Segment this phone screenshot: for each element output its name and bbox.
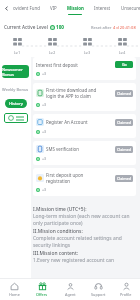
staticText: First-time download and bbox=[46, 87, 97, 93]
staticText: Lv.1 bbox=[14, 50, 21, 55]
button[interactable]: Profile bbox=[112, 279, 140, 300]
button[interactable]: Offers bbox=[28, 279, 56, 300]
staticText: Offers bbox=[36, 292, 48, 297]
staticText: Current Active Level bbox=[4, 24, 48, 30]
staticText: Home bbox=[9, 292, 20, 297]
staticText: SMS verification bbox=[46, 146, 79, 152]
button[interactable]: Claimed bbox=[115, 90, 133, 97]
staticText: 4 d 20:41:08 bbox=[113, 25, 136, 30]
staticText: Claimed bbox=[117, 120, 131, 125]
staticText: Long-term mission (each new account can … bbox=[33, 213, 130, 226]
staticText: Register An Account bbox=[46, 119, 88, 125]
staticText: +3 bbox=[42, 71, 47, 76]
button[interactable]: Claimed bbox=[115, 146, 133, 153]
staticText: Weekly Bonus bbox=[2, 87, 29, 92]
button[interactable]: Register An Account bbox=[33, 114, 136, 138]
button[interactable]: Claimed bbox=[115, 119, 133, 126]
button[interactable]: History bbox=[5, 99, 27, 108]
button[interactable]: Back bbox=[0, 0, 13, 16]
staticText: II.Mission conditions: bbox=[33, 228, 83, 235]
button[interactable]: Unsecure bbox=[121, 0, 140, 16]
button[interactable]: Weekly Bonus bbox=[2, 85, 29, 94]
button[interactable]: Newcomer Bonus bbox=[2, 65, 29, 78]
staticText: Support bbox=[91, 292, 106, 297]
staticText: Mission bbox=[67, 5, 84, 11]
staticText: registration bbox=[46, 178, 70, 184]
staticText: Claimed bbox=[117, 147, 131, 152]
staticText: Interest bbox=[94, 5, 111, 11]
button[interactable]: SMS verification bbox=[33, 141, 136, 165]
staticText: History bbox=[9, 101, 23, 106]
staticText: +3 bbox=[42, 102, 47, 107]
button[interactable]: Go bbox=[115, 61, 133, 68]
staticText: Newcomer Bonus bbox=[2, 67, 29, 77]
staticText: Go bbox=[122, 62, 127, 67]
button[interactable]: First-time download and bbox=[33, 83, 136, 111]
staticText: Interest first deposit bbox=[36, 62, 78, 68]
staticText: ovident Fund bbox=[13, 5, 40, 11]
button[interactable]: VIP bbox=[50, 0, 57, 16]
button[interactable]: Claimed bbox=[115, 175, 133, 182]
staticText: Agent bbox=[65, 292, 76, 297]
button[interactable]: Level 3 bbox=[77, 38, 97, 55]
button[interactable]: Support bbox=[84, 279, 112, 300]
staticText: I.Mission time (UTC+5): bbox=[33, 206, 87, 213]
button[interactable]: Home bbox=[0, 279, 28, 300]
button[interactable]: Mission bbox=[67, 0, 84, 16]
staticText: 100 bbox=[56, 24, 64, 30]
staticText: Lv.3 bbox=[84, 50, 91, 55]
staticText: First deposit upon bbox=[46, 172, 84, 178]
staticText: +3 bbox=[42, 156, 47, 161]
staticText: Lv.2 bbox=[49, 50, 56, 55]
staticText: login the APP to claim bbox=[46, 93, 91, 99]
staticText: Lv.4 bbox=[119, 50, 126, 55]
staticText: Claimed bbox=[117, 176, 131, 181]
button[interactable]: Level 1 bbox=[7, 38, 27, 55]
staticText: Profile bbox=[120, 292, 132, 297]
staticText: +3 bbox=[42, 187, 47, 192]
button[interactable]: Interest first deposit bbox=[33, 57, 136, 80]
staticText: VIP bbox=[50, 5, 57, 11]
staticText: Claimed bbox=[117, 91, 131, 96]
staticText: Reset after bbox=[91, 25, 112, 30]
button[interactable]: First deposit upon bbox=[33, 168, 136, 196]
staticText: 1.Every new registered account can bbox=[33, 257, 115, 264]
button[interactable]: Agent bbox=[56, 279, 84, 300]
staticText: Complete account related settings and se… bbox=[33, 235, 122, 248]
button[interactable]: Interest bbox=[94, 0, 111, 16]
button[interactable]: Rules bbox=[4, 113, 28, 123]
staticText: Unsecure bbox=[121, 5, 140, 11]
staticText: +3 bbox=[42, 129, 47, 134]
button[interactable]: Level 4 bbox=[112, 38, 132, 55]
staticText: III.Mission content: bbox=[33, 250, 79, 257]
button[interactable]: Level 2 bbox=[42, 38, 62, 55]
button[interactable]: ovident Fund bbox=[13, 0, 40, 16]
